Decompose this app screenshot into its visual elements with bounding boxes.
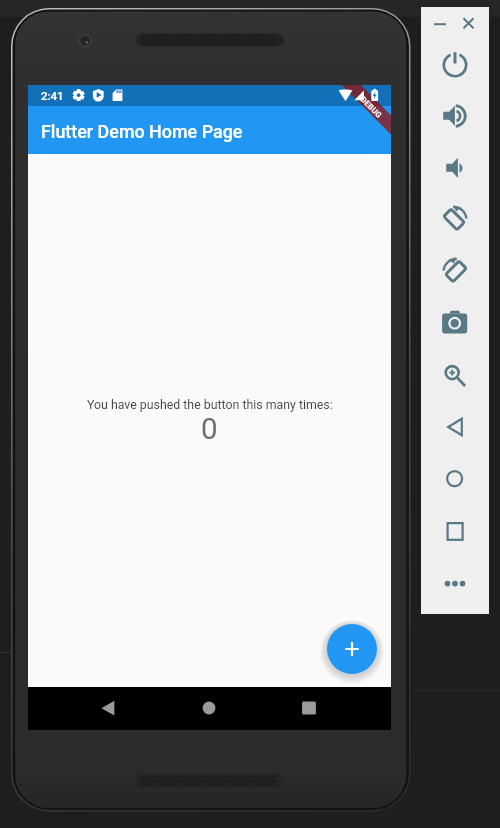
button[interactable]: Power bbox=[433, 43, 477, 87]
button[interactable]: Recent apps bbox=[289, 688, 329, 728]
staticText: Flutter Demo Home Page bbox=[41, 121, 243, 142]
staticText: DEBUG bbox=[359, 95, 384, 120]
button[interactable]: Increment bbox=[327, 624, 377, 674]
staticText: 2:41 bbox=[41, 89, 64, 102]
button[interactable]: Rotate left bbox=[433, 198, 477, 242]
button[interactable]: Volume up bbox=[433, 94, 477, 138]
button[interactable]: Home bbox=[189, 688, 229, 728]
button[interactable]: Screenshot bbox=[433, 301, 477, 345]
staticText: 0 bbox=[201, 412, 218, 447]
button[interactable]: Back bbox=[433, 405, 477, 449]
button[interactable]: Overview bbox=[433, 509, 477, 553]
button[interactable]: Zoom bbox=[433, 353, 477, 397]
button[interactable]: More bbox=[433, 562, 477, 606]
button[interactable]: Home bbox=[433, 457, 477, 501]
button[interactable]: Volume down bbox=[433, 146, 477, 190]
staticText: You have pushed the button this many tim… bbox=[87, 398, 333, 412]
button[interactable]: Rotate right bbox=[433, 250, 477, 294]
button[interactable]: Back bbox=[88, 688, 128, 728]
